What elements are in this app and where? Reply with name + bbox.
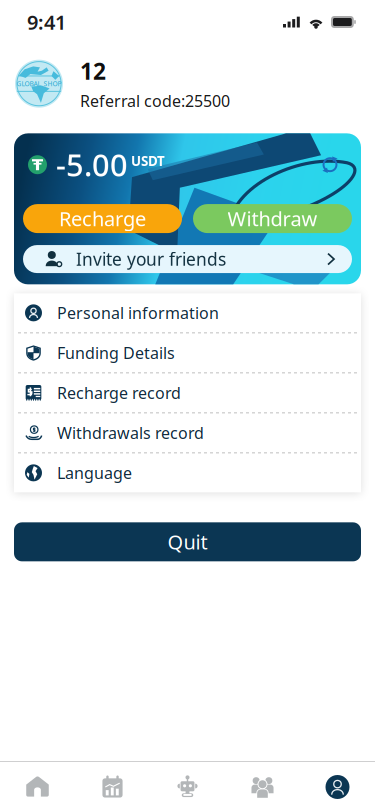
staticText: Withdrawals record [57, 422, 204, 443]
button[interactable]: Invite your friends [23, 245, 352, 273]
staticText: Withdraw [227, 205, 317, 232]
button[interactable]: Team [225, 762, 300, 812]
staticText: Referral code:25500 [80, 90, 230, 111]
staticText: GLOBAL SHOP [16, 79, 61, 88]
button[interactable]: Withdrawals record [14, 413, 361, 452]
button[interactable]: Statistics [75, 762, 150, 812]
staticText: Personal information [57, 302, 219, 323]
staticText: 9:41 [27, 9, 66, 35]
button[interactable]: Personal information [14, 293, 361, 332]
button[interactable]: Home [0, 762, 75, 812]
button[interactable]: Quit [14, 522, 361, 561]
button[interactable]: Refresh balance [321, 156, 339, 174]
button[interactable]: Language [14, 453, 361, 492]
button[interactable]: Withdraw [193, 204, 352, 233]
staticText: USDT [131, 152, 165, 170]
staticText: Recharge record [57, 382, 181, 403]
button[interactable]: Funding Details [14, 333, 361, 372]
button[interactable]: Recharge [23, 204, 182, 233]
button[interactable]: Recharge record [14, 373, 361, 412]
button[interactable]: Robot [150, 762, 225, 812]
staticText: Funding Details [57, 342, 175, 363]
staticText: Recharge [59, 205, 146, 232]
staticText: 12 [80, 56, 106, 86]
staticText: Language [57, 462, 132, 483]
staticText: -5.00 [56, 144, 128, 185]
button[interactable]: Profile [300, 762, 375, 812]
staticText: Quit [167, 529, 207, 555]
staticText: Invite your friends [76, 248, 226, 271]
